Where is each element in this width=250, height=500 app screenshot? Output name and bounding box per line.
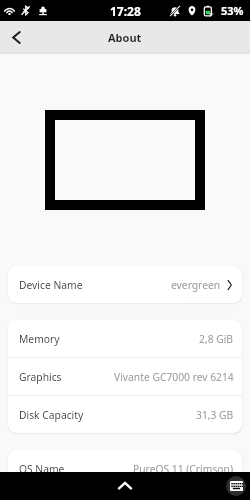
staticText: Memory	[19, 332, 60, 346]
staticText: Device Name	[19, 278, 83, 292]
button[interactable]: Device Name	[8, 266, 242, 303]
button[interactable]: Graphics	[8, 358, 242, 395]
staticText: Disk Capacity	[19, 408, 84, 422]
button[interactable]: Back	[0, 21, 32, 53]
staticText: 2,8 GiB	[199, 332, 234, 346]
button[interactable]: Disk Capacity	[8, 396, 242, 433]
staticText: PureOS 11 (Crimson)	[133, 462, 234, 476]
staticText: OS Name	[19, 462, 65, 476]
button[interactable]: OS Name	[8, 450, 242, 487]
staticText: evergreen	[171, 278, 221, 292]
staticText: 31,3 GB	[196, 408, 234, 422]
staticText: 17:28	[110, 3, 141, 19]
button[interactable]: Collapse	[111, 472, 139, 500]
staticText: 53%	[221, 3, 244, 18]
staticText: Graphics	[19, 370, 62, 384]
button[interactable]: Memory	[8, 320, 242, 357]
staticText: Vivante GC7000 rev 6214	[114, 370, 234, 384]
button[interactable]: Keyboard	[226, 476, 246, 496]
staticText: About	[108, 30, 142, 45]
